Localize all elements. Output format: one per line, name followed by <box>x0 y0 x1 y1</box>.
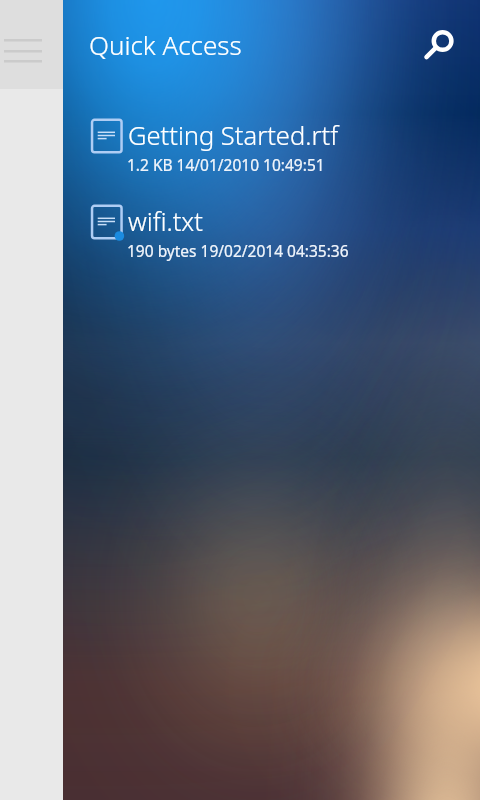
staticText: Getting Started.rtf <box>128 118 339 153</box>
button[interactable]: wifi.txt <box>89 203 389 271</box>
staticText: 190 bytes 19/02/2014 04:35:36 <box>127 240 349 261</box>
button[interactable]: Search <box>414 13 470 69</box>
staticText: Quick Access <box>89 27 242 62</box>
button[interactable]: Getting Started.rtf <box>89 117 389 185</box>
button[interactable]: Open navigation drawer <box>0 0 63 89</box>
staticText: 1.2 KB 14/01/2010 10:49:51 <box>127 154 325 175</box>
staticText: wifi.txt <box>128 204 203 239</box>
